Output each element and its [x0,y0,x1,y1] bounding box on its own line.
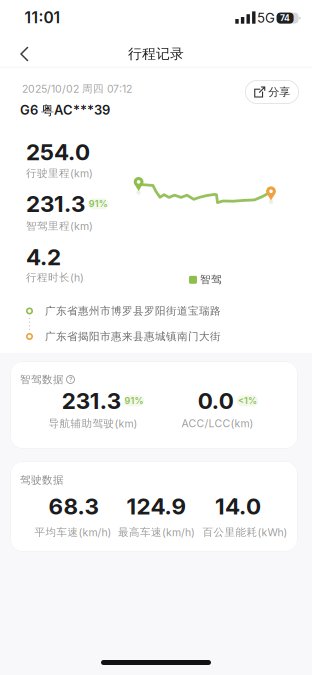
staticText: 124.9 [126,493,186,520]
staticText: 14.0 [215,493,261,520]
staticText: 导航辅助驾驶(km) [48,417,137,430]
staticText: 分享 [268,85,290,99]
staticText: 0.0 [198,387,234,414]
staticText: 智驾里程(km) [26,219,93,232]
staticText: 广东省揭阳市惠来县惠城镇南门大街 [45,330,221,343]
button[interactable]: 智驾数据说明 [64,373,76,385]
staticText: 驾驶数据 [20,473,64,487]
staticText: 68.3 [48,493,98,520]
staticText: 最高车速(km/h) [118,526,195,539]
staticText: ? [69,376,72,383]
staticText: 智驾 [200,273,222,286]
staticText: ACC/LCC(km) [181,417,253,430]
staticText: 231.3 [26,190,85,217]
staticText: 4.2 [26,243,61,271]
staticText: 行程记录 [128,45,184,63]
staticText: 11:01 [24,8,60,27]
staticText: G6 粤AC***39 [20,102,110,119]
staticText: 2025/10/02 周四 07:12 [22,82,132,95]
staticText: 行驶里程(km) [26,167,93,180]
staticText: <1% [238,395,257,406]
staticText: 行程时长(h) [26,271,84,284]
staticText: 平均车速(km/h) [34,526,111,539]
staticText: 254.0 [26,138,90,166]
staticText: 231.3 [62,387,121,414]
staticText: 广东省惠州市博罗县罗阳街道宝瑞路 [45,304,221,318]
button[interactable]: Back [0,0,40,70]
staticText: 智驾数据 [20,373,64,386]
staticText: 74 [280,13,290,23]
button[interactable]: 分享 [245,80,299,104]
staticText: 91% [124,395,143,406]
staticText: 百公里能耗(kWh) [202,526,287,539]
staticText: 5G [257,10,275,26]
staticText: 91% [89,198,108,209]
